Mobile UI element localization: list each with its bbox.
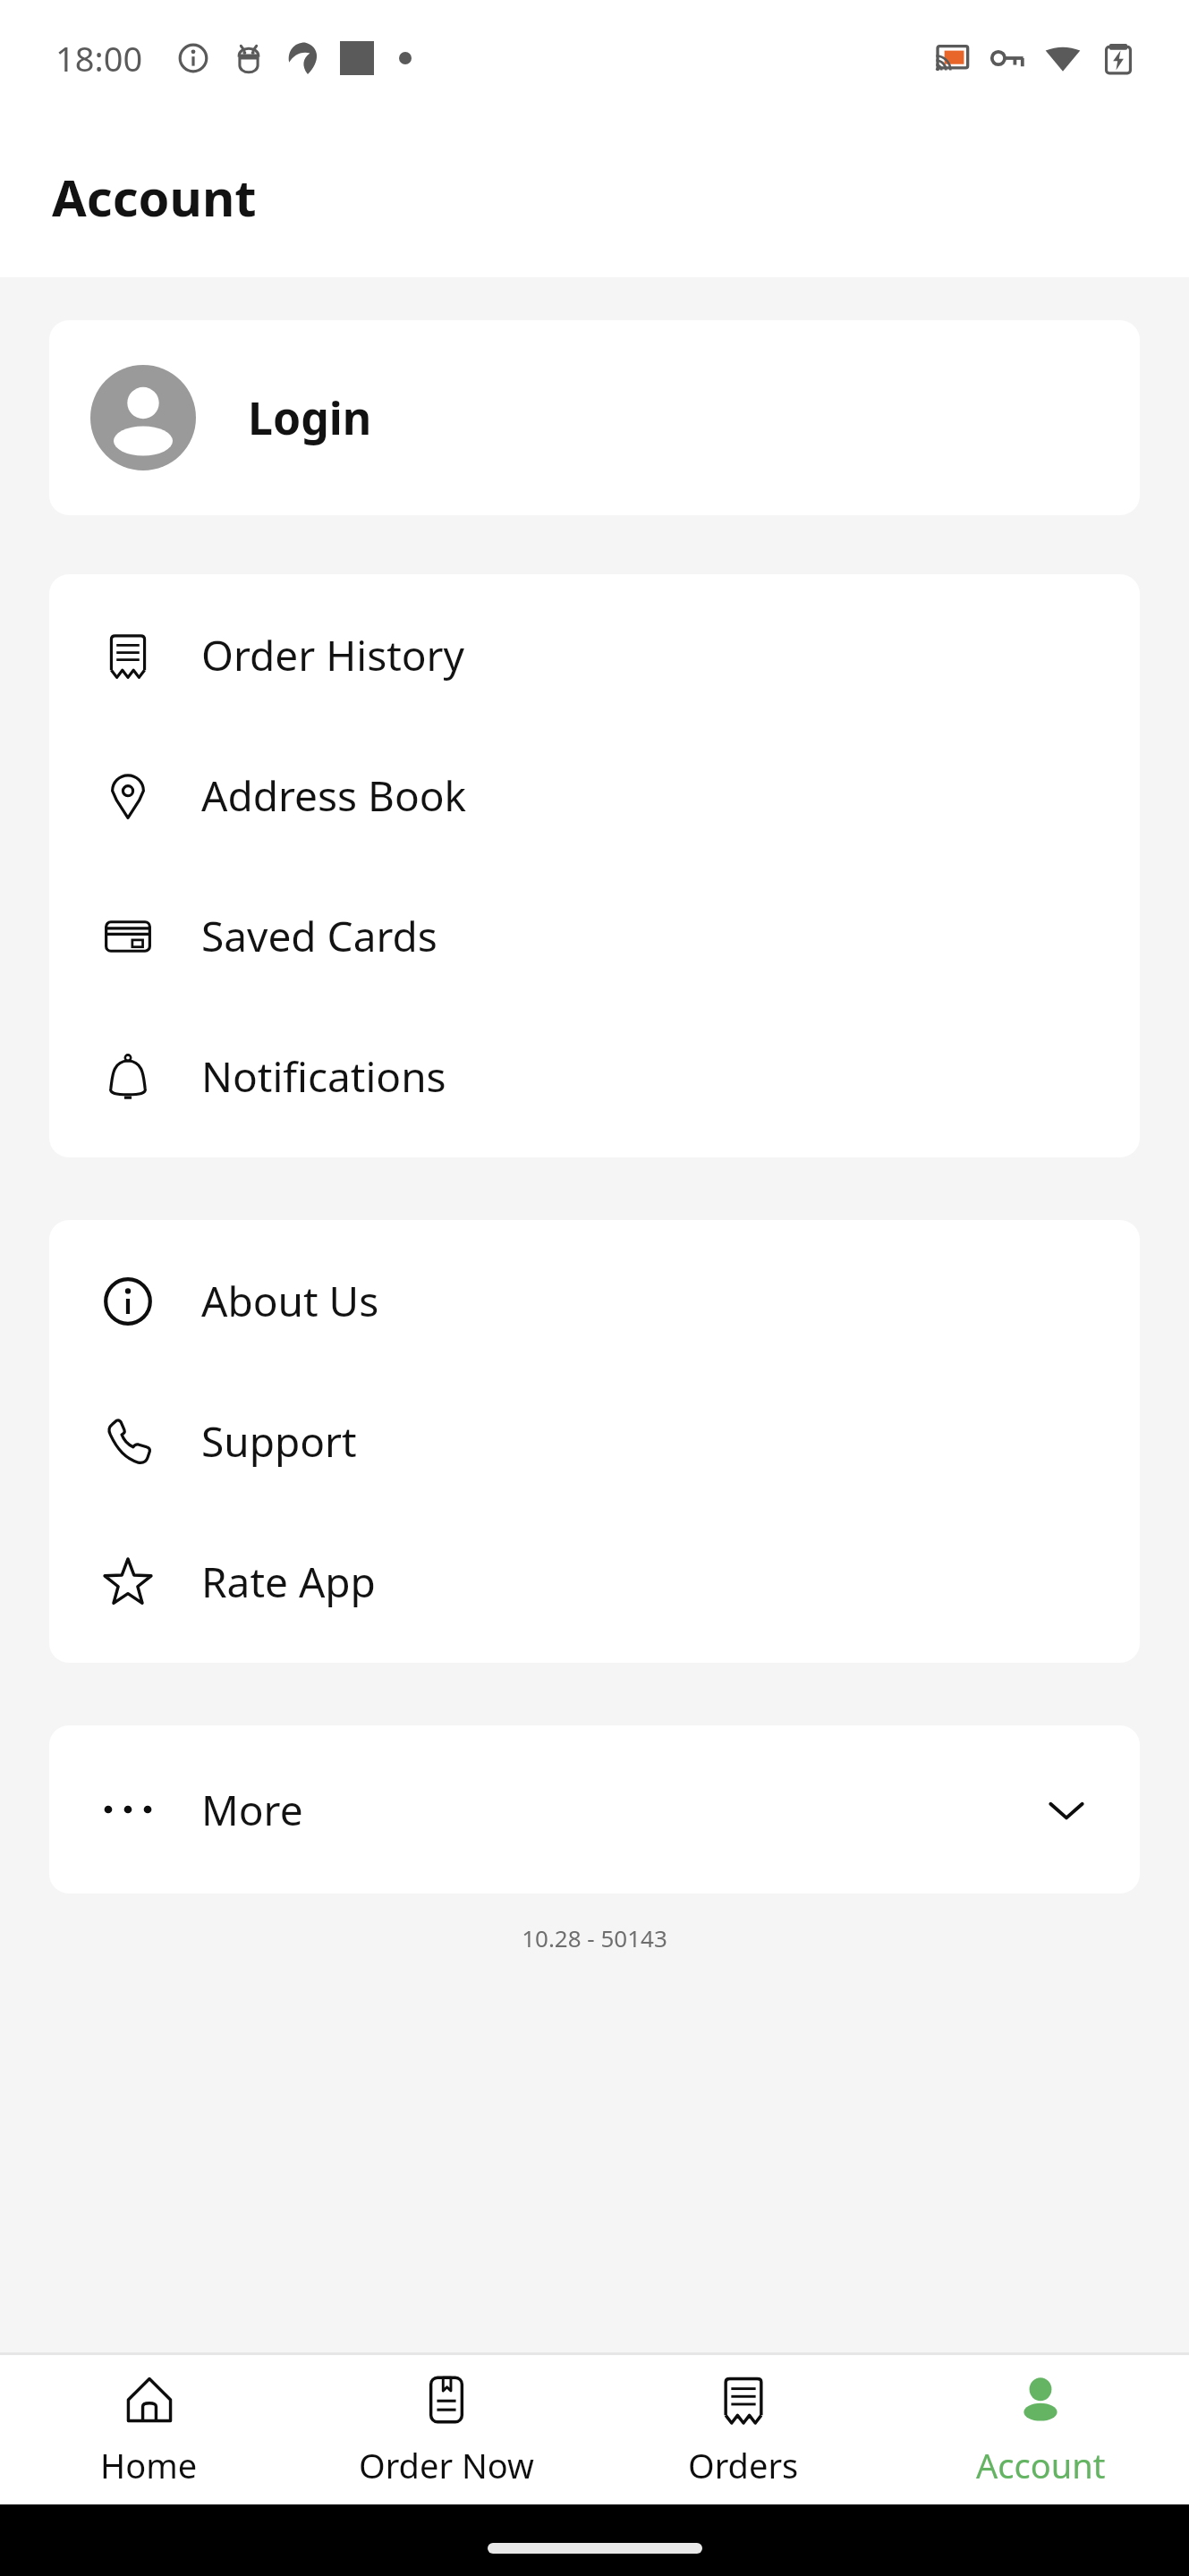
staticText: Login (248, 387, 372, 448)
staticText: Home (100, 2442, 198, 2488)
staticText: Orders (688, 2442, 799, 2488)
staticText: Account (52, 163, 257, 231)
button[interactable]: Notifications (49, 1006, 1140, 1147)
button[interactable]: Saved Cards (49, 866, 1140, 1006)
button[interactable]: Order History (49, 585, 1140, 725)
button[interactable]: Order Now (298, 2355, 595, 2504)
staticText: Account (976, 2442, 1106, 2488)
button[interactable]: Address Book (49, 725, 1140, 866)
staticText: About Us (201, 1273, 379, 1329)
button[interactable]: Account (892, 2355, 1189, 2504)
staticText: 10.28 - 50143 (0, 1922, 1189, 1953)
staticText: Saved Cards (201, 908, 437, 964)
button[interactable]: Support (49, 1371, 1140, 1512)
button[interactable]: Login (49, 320, 1140, 515)
staticText: Rate App (201, 1554, 376, 1610)
staticText: Order History (201, 627, 465, 683)
button[interactable]: Rate App (49, 1512, 1140, 1652)
staticText: Address Book (201, 767, 467, 824)
button[interactable]: About Us (49, 1231, 1140, 1371)
button[interactable]: Home (0, 2355, 298, 2504)
button[interactable]: More (49, 1725, 1140, 1894)
staticText: More (201, 1782, 303, 1838)
staticText: Notifications (201, 1048, 446, 1105)
staticText: Order Now (359, 2442, 534, 2488)
button[interactable]: Orders (595, 2355, 892, 2504)
staticText: Support (201, 1413, 357, 1470)
staticText: 18:00 (55, 35, 143, 81)
